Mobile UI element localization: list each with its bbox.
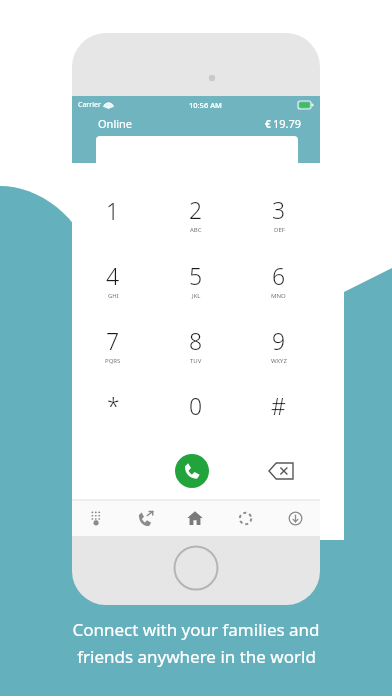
staticText: Connect with your families and bbox=[72, 618, 320, 641]
button[interactable]: 4 bbox=[72, 247, 154, 312]
staticText: 5 bbox=[189, 260, 203, 291]
staticText: 6 bbox=[272, 260, 286, 291]
staticText: PQRS bbox=[105, 357, 121, 365]
staticText: 8 bbox=[189, 325, 203, 356]
button[interactable]: € bbox=[265, 116, 302, 131]
button[interactable]: 6 bbox=[237, 247, 320, 312]
button[interactable]: 2 bbox=[154, 181, 237, 247]
button[interactable]: Recents bbox=[121, 500, 170, 536]
button[interactable]: 9 bbox=[237, 312, 320, 377]
button[interactable]: 1 bbox=[72, 181, 154, 247]
button[interactable]: 0 bbox=[154, 377, 237, 442]
staticText: MNO bbox=[271, 292, 286, 300]
button[interactable]: Online bbox=[98, 116, 133, 131]
staticText: 3 bbox=[272, 194, 286, 225]
staticText: GHI bbox=[108, 292, 119, 300]
staticText: * bbox=[107, 390, 120, 421]
button[interactable]: * bbox=[72, 377, 154, 442]
staticText: Carrier bbox=[78, 100, 101, 110]
staticText: Online bbox=[98, 116, 133, 131]
staticText: 1 bbox=[106, 195, 120, 226]
button[interactable]: Call bbox=[175, 454, 209, 488]
button[interactable]: Contacts bbox=[220, 500, 270, 536]
staticText: # bbox=[271, 390, 286, 421]
staticText: DEF bbox=[274, 226, 285, 234]
button[interactable]: Delete bbox=[266, 460, 296, 482]
button[interactable]: Keypad bbox=[72, 500, 121, 536]
staticText: 19.79 bbox=[273, 116, 302, 131]
staticText: WXYZ bbox=[271, 357, 287, 365]
staticText: TUV bbox=[190, 357, 202, 365]
staticText: 10:56 AM bbox=[189, 100, 222, 110]
button[interactable]: 5 bbox=[154, 247, 237, 312]
button[interactable]: 7 bbox=[72, 312, 154, 377]
button[interactable]: # bbox=[237, 377, 320, 442]
staticText: ABC bbox=[190, 226, 202, 234]
staticText: 7 bbox=[106, 325, 120, 356]
staticText: 2 bbox=[189, 194, 203, 225]
staticText: 0 bbox=[189, 390, 203, 421]
button[interactable]: Support bbox=[270, 500, 320, 536]
staticText: JKL bbox=[192, 292, 201, 300]
button[interactable] bbox=[96, 136, 298, 172]
button[interactable]: 3 bbox=[237, 181, 320, 247]
staticText: 9 bbox=[272, 325, 286, 356]
staticText: 4 bbox=[106, 260, 120, 291]
staticText: € bbox=[265, 117, 271, 131]
button[interactable]: Home bbox=[170, 500, 220, 536]
button[interactable]: 8 bbox=[154, 312, 237, 377]
staticText: friends anywhere in the world bbox=[77, 645, 316, 668]
